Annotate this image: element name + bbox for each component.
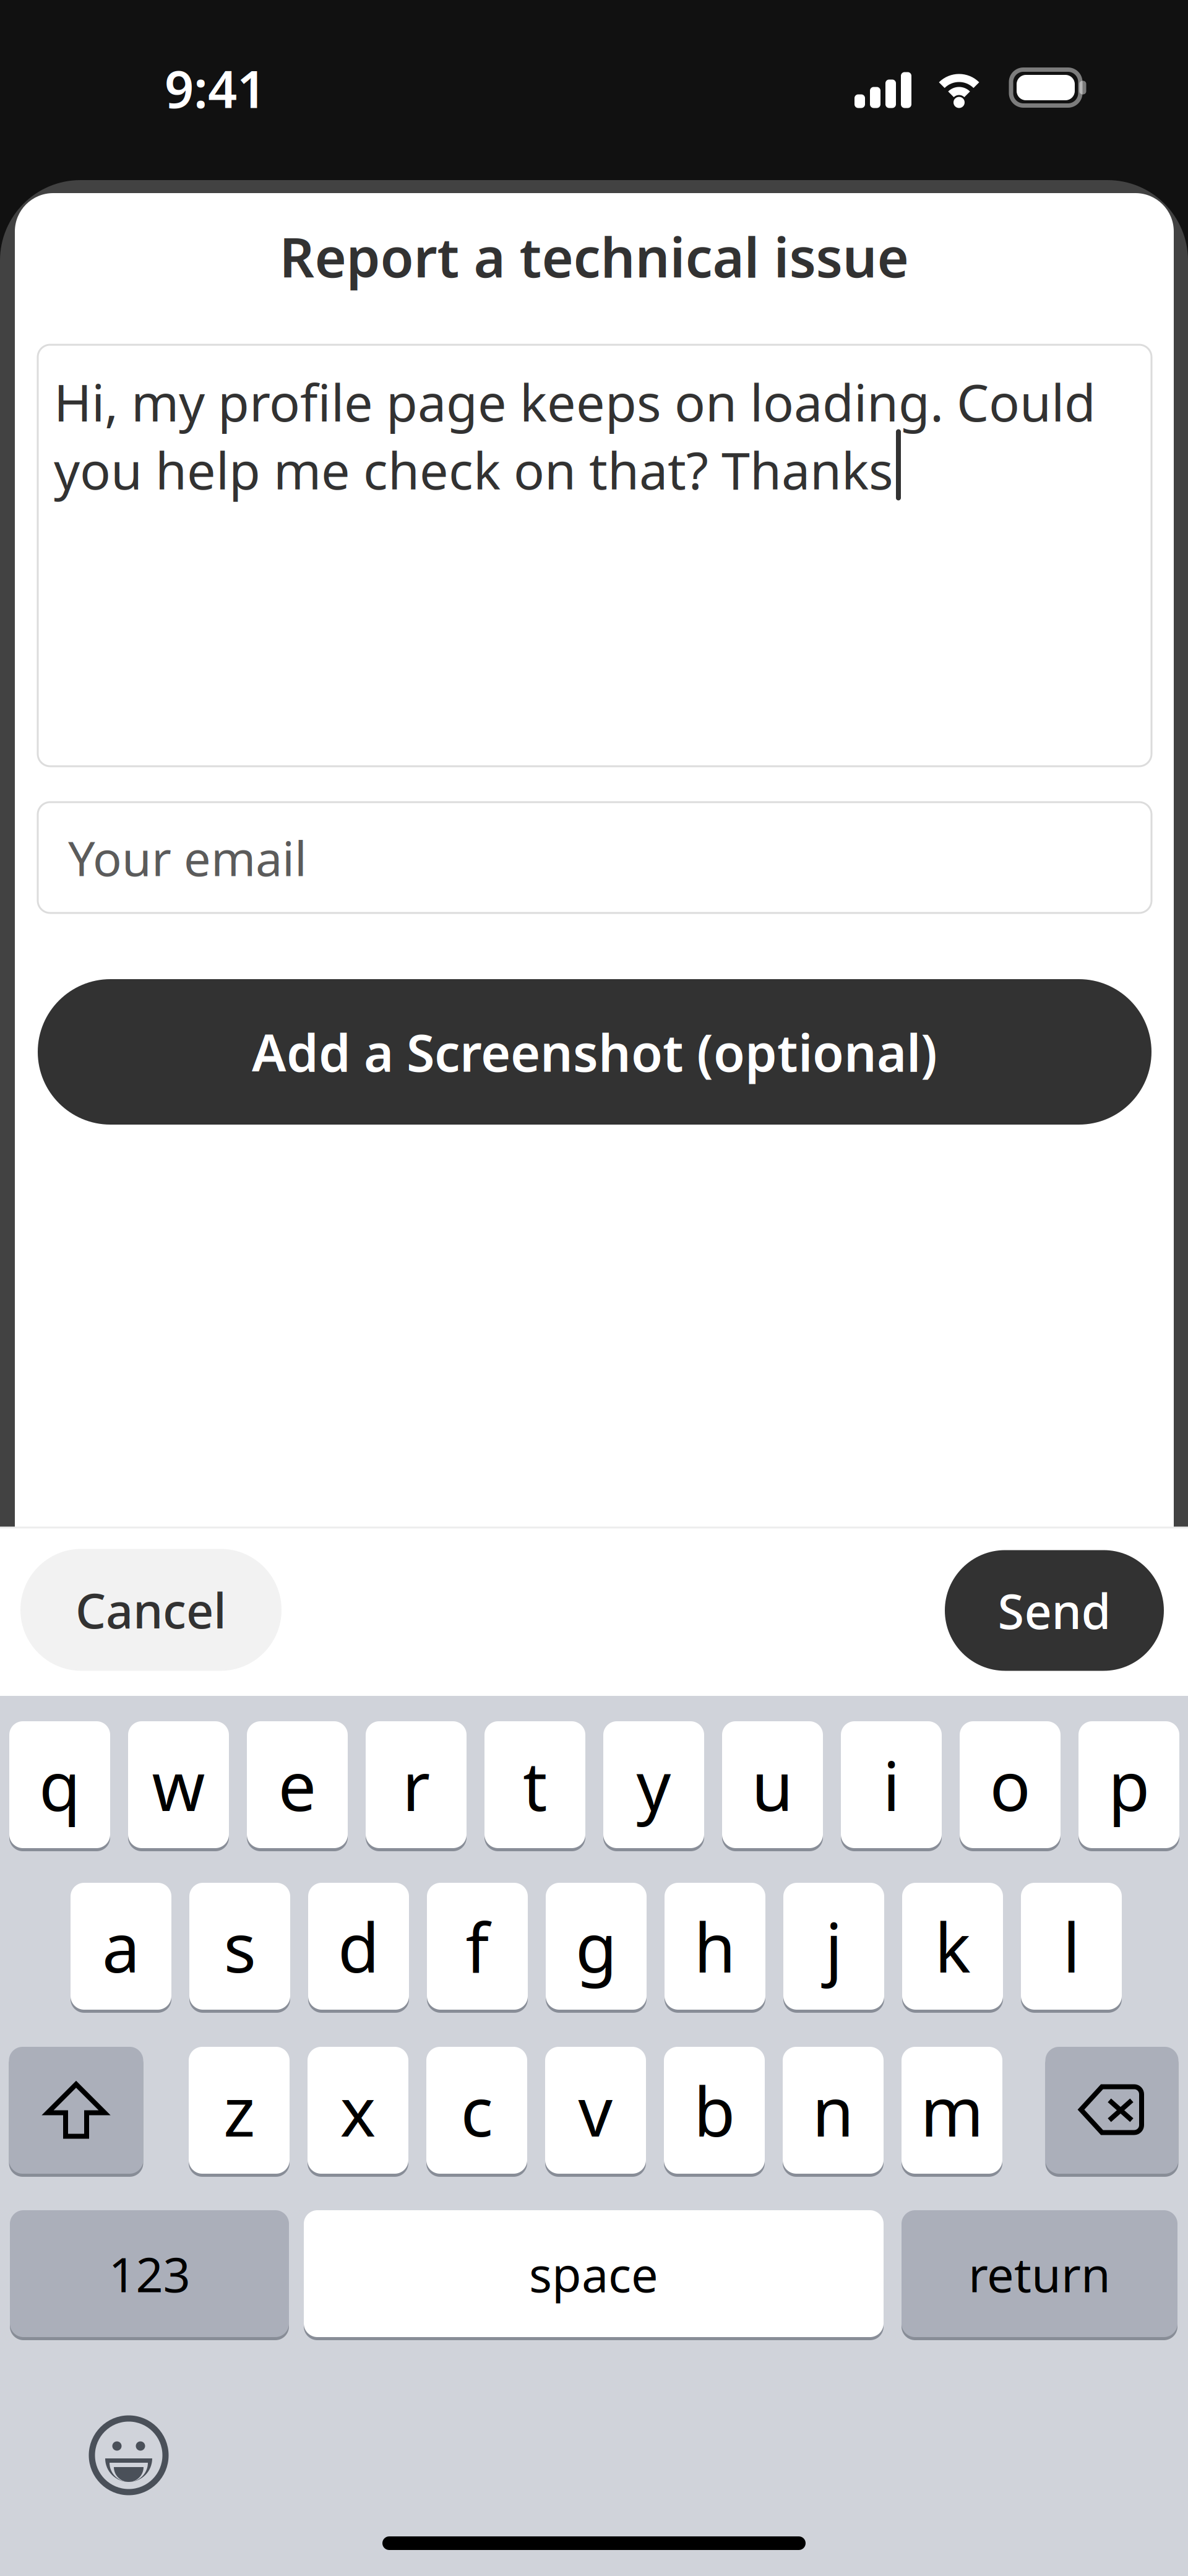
staticText: return: [968, 2242, 1111, 2305]
button[interactable]: c: [426, 2045, 527, 2176]
staticText: q: [39, 1740, 80, 1830]
staticText: j: [825, 1901, 842, 1991]
staticText: o: [990, 1740, 1031, 1830]
staticText: s: [224, 1901, 256, 1991]
staticText: Add a Screenshot (optional): [252, 1018, 937, 1086]
staticText: Hi, my profile page keeps on loading. Co…: [54, 368, 1096, 504]
button[interactable]: y: [603, 1719, 704, 1850]
staticText: f: [466, 1901, 489, 1991]
staticText: r: [402, 1740, 430, 1830]
staticText: n: [812, 2065, 854, 2155]
staticText: w: [152, 1740, 205, 1830]
button[interactable]: o: [960, 1719, 1061, 1850]
staticText: t: [523, 1740, 547, 1830]
button[interactable]: Emoji: [79, 2406, 178, 2505]
button[interactable]: a: [71, 1881, 171, 2012]
button[interactable]: d: [308, 1881, 409, 2012]
button[interactable]: z: [189, 2045, 290, 2176]
button[interactable]: Send: [945, 1550, 1164, 1671]
button[interactable]: g: [546, 1881, 647, 2012]
staticText: a: [102, 1901, 140, 1991]
button[interactable]: m: [902, 2045, 1002, 2176]
button[interactable]: e: [247, 1719, 348, 1850]
button[interactable]: Cancel: [20, 1549, 282, 1671]
button[interactable]: i: [841, 1719, 942, 1850]
staticText: Report a technical issue: [279, 220, 909, 292]
button[interactable]: q: [9, 1719, 110, 1850]
staticText: 9:41: [165, 54, 266, 122]
staticText: d: [338, 1901, 379, 1991]
staticText: Send: [998, 1579, 1111, 1642]
button[interactable]: Delete: [1045, 2045, 1178, 2176]
button[interactable]: h: [665, 1881, 765, 2012]
button[interactable]: Add a Screenshot (optional): [38, 979, 1151, 1125]
button[interactable]: Shift: [9, 2045, 143, 2176]
button[interactable]: space: [304, 2208, 884, 2339]
button[interactable]: return: [902, 2208, 1177, 2339]
staticText: i: [883, 1740, 900, 1830]
button[interactable]: b: [664, 2045, 765, 2176]
staticText: b: [694, 2065, 735, 2155]
button[interactable]: w: [128, 1719, 229, 1850]
button[interactable]: 123: [10, 2208, 289, 2339]
staticText: l: [1063, 1901, 1080, 1991]
staticText: Your email: [68, 826, 307, 889]
button[interactable]: r: [366, 1719, 467, 1850]
button[interactable]: t: [484, 1719, 585, 1850]
staticText: 123: [109, 2242, 190, 2305]
button[interactable]: n: [783, 2045, 884, 2176]
staticText: e: [278, 1740, 316, 1830]
button[interactable]: j: [783, 1881, 884, 2012]
staticText: u: [751, 1740, 794, 1830]
staticText: x: [340, 2065, 376, 2155]
button[interactable]: u: [722, 1719, 823, 1850]
staticText: g: [575, 1901, 617, 1991]
button[interactable]: k: [902, 1881, 1003, 2012]
staticText: c: [461, 2065, 493, 2155]
staticText: space: [529, 2242, 658, 2305]
staticText: Cancel: [75, 1578, 226, 1642]
button[interactable]: p: [1078, 1719, 1179, 1850]
button[interactable]: s: [189, 1881, 290, 2012]
button[interactable]: v: [545, 2045, 646, 2176]
button[interactable]: x: [308, 2045, 408, 2176]
staticText: m: [920, 2065, 984, 2155]
button[interactable]: f: [427, 1881, 528, 2012]
staticText: h: [694, 1901, 736, 1991]
staticText: y: [636, 1740, 671, 1830]
staticText: p: [1108, 1740, 1150, 1830]
staticText: v: [578, 2065, 613, 2155]
button[interactable]: l: [1021, 1881, 1122, 2012]
staticText: k: [935, 1901, 971, 1991]
staticText: z: [223, 2065, 255, 2155]
